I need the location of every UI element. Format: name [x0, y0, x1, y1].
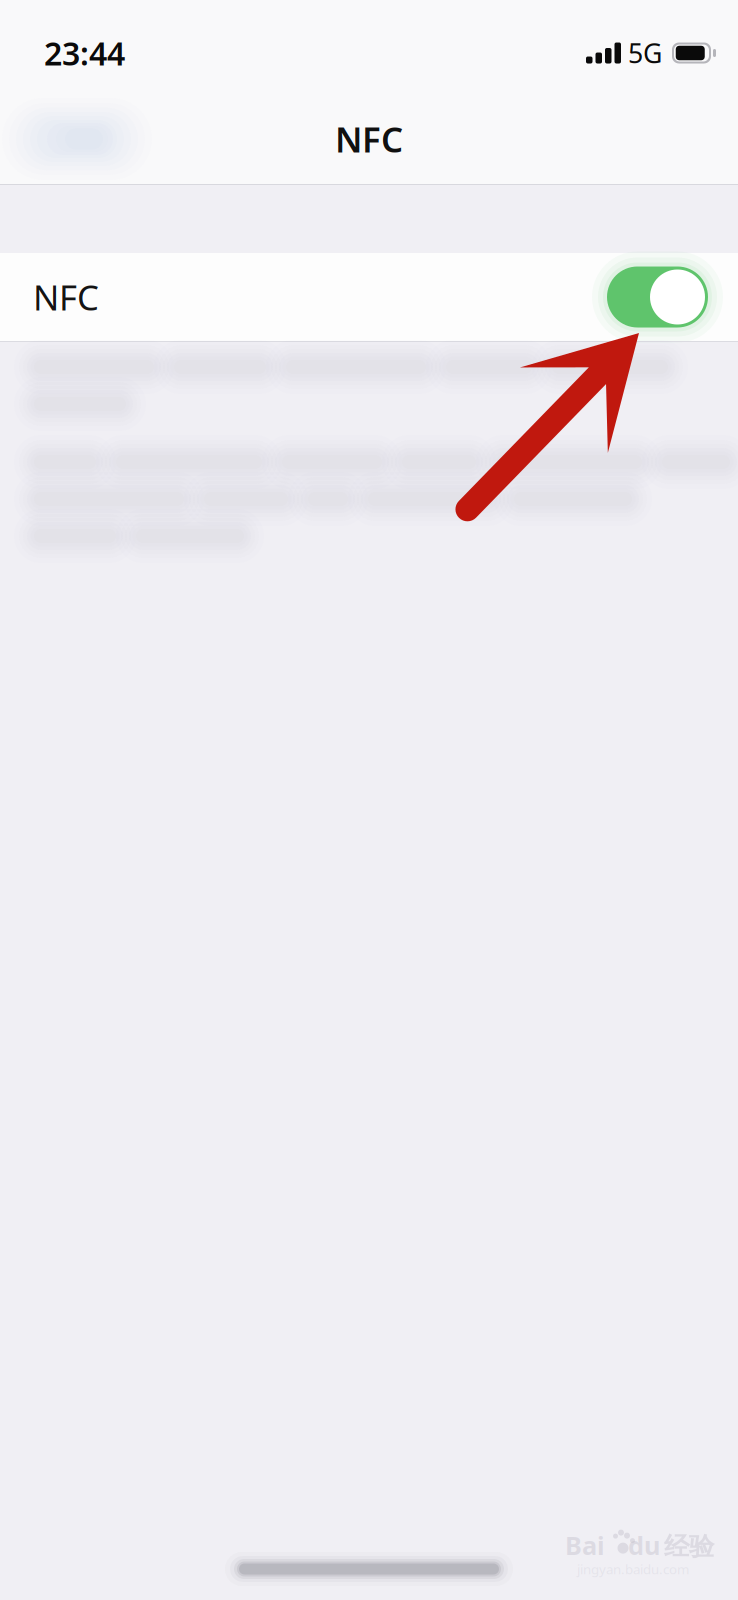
staticText: 5G: [628, 35, 662, 71]
staticText: Bai: [565, 1528, 605, 1562]
staticText: 23:44: [44, 32, 125, 74]
staticText: du: [628, 1528, 660, 1562]
staticText: 经验: [664, 1531, 714, 1562]
button[interactable]: NFC: [0, 253, 738, 341]
button[interactable]: Back: [0, 94, 152, 184]
staticText: NFC: [335, 116, 403, 162]
staticText: NFC: [33, 274, 99, 320]
staticText: jingyan.baidu.com: [577, 1560, 689, 1578]
